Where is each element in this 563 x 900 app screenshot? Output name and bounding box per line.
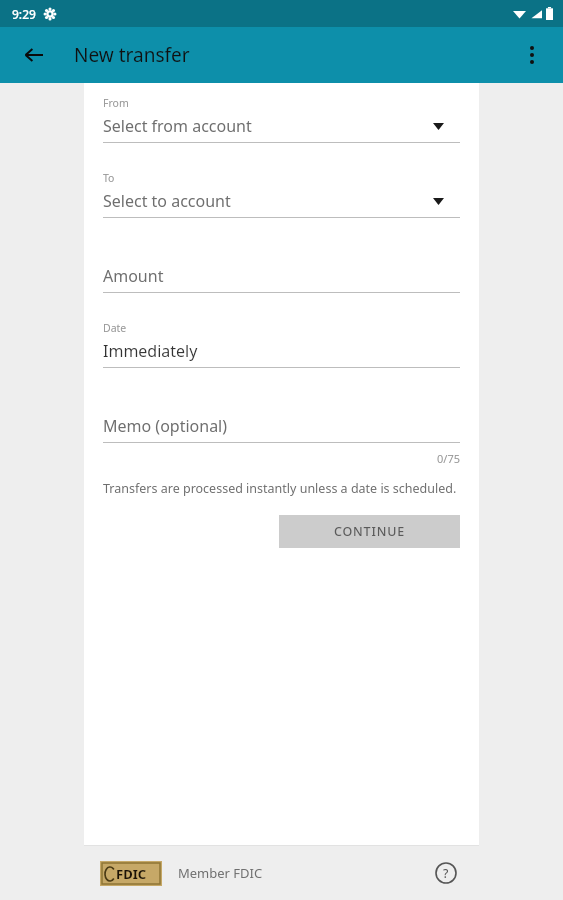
button[interactable]: Back — [12, 33, 56, 77]
staticText: Amount — [103, 265, 164, 287]
staticText: New transfer — [74, 42, 190, 68]
button[interactable]: More options — [511, 34, 553, 76]
staticText: Date — [103, 321, 127, 335]
staticText: Select from account — [103, 115, 252, 137]
staticText: Select to account — [103, 190, 231, 212]
button[interactable]: Select to account — [103, 188, 460, 218]
staticText: FDIC — [116, 865, 147, 883]
staticText: Immediately — [103, 340, 198, 362]
staticText: Transfers are processed instantly unless… — [103, 480, 457, 497]
button[interactable]: Select from account — [103, 113, 460, 143]
button[interactable]: Amount — [103, 263, 460, 293]
button[interactable]: CONTINUE — [279, 515, 460, 548]
button[interactable]: Memo (optional) — [103, 413, 460, 443]
staticText: 0/75 — [437, 451, 460, 466]
staticText: From — [103, 96, 129, 110]
button[interactable]: Immediately — [103, 338, 460, 368]
staticText: 9:29 — [12, 6, 36, 22]
staticText: To — [103, 171, 115, 185]
staticText: Member FDIC — [178, 864, 263, 882]
staticText: CONTINUE — [334, 523, 405, 540]
staticText: ? — [443, 865, 449, 881]
button[interactable]: Help — [429, 856, 463, 890]
staticText: Memo (optional) — [103, 415, 228, 437]
